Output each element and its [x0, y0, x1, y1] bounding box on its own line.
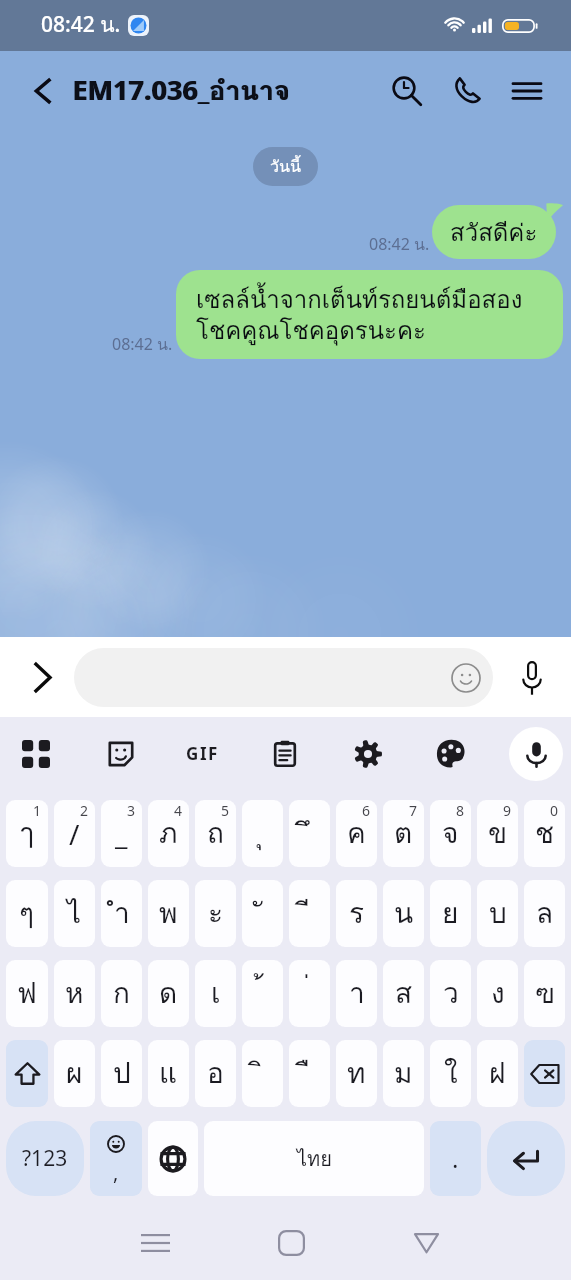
- button[interactable]: ห: [54, 960, 95, 1027]
- button[interactable]: Emoji: [90, 1121, 142, 1196]
- button[interactable]: ?123: [6, 1121, 84, 1196]
- button[interactable]: ค: [336, 800, 377, 867]
- staticText: .: [452, 1142, 459, 1175]
- button[interactable]: พ: [148, 880, 189, 947]
- button[interactable]: เซลล์น้ำจากเต็นท์รถยนต์มือสอง โชคคูณโชคอ…: [176, 270, 563, 359]
- button[interactable]: Settings: [339, 712, 397, 795]
- staticText: /: [69, 815, 80, 853]
- button[interactable]: Back: [20, 68, 66, 114]
- staticText: ไ: [67, 891, 82, 936]
- staticText: ๆ: [19, 891, 35, 936]
- staticText: ๅ: [20, 811, 34, 856]
- staticText: 08:42 น.: [41, 8, 121, 41]
- button[interactable]: ช: [524, 800, 565, 867]
- button[interactable]: GIF: [174, 712, 232, 795]
- button[interactable]: ๆ: [6, 880, 48, 947]
- button[interactable]: /: [54, 800, 95, 867]
- staticText: EM17.036_อำนาจ: [72, 69, 290, 112]
- button[interactable]: ส: [383, 960, 424, 1027]
- button[interactable]: า: [336, 960, 377, 1027]
- button[interactable]: ึ: [289, 800, 330, 867]
- staticText: ใ: [444, 1051, 458, 1096]
- staticText: ำ: [114, 891, 130, 936]
- button[interactable]: ม: [383, 1040, 424, 1107]
- staticText: ,: [113, 1159, 119, 1186]
- button[interactable]: ะ: [195, 880, 236, 947]
- button[interactable]: Emoji: [74, 648, 493, 707]
- button[interactable]: .: [430, 1121, 481, 1196]
- button[interactable]: Home: [259, 1211, 323, 1275]
- button[interactable]: ๅ: [6, 800, 48, 867]
- button[interactable]: Clipboard: [256, 712, 314, 795]
- button[interactable]: Switch language: [148, 1121, 198, 1196]
- button[interactable]: Recent apps: [123, 1211, 187, 1275]
- button[interactable]: ่: [289, 960, 330, 1027]
- button[interactable]: Themes: [422, 712, 480, 795]
- button[interactable]: อ: [195, 1040, 236, 1107]
- button[interactable]: ร: [336, 880, 377, 947]
- button[interactable]: _: [101, 800, 142, 867]
- button[interactable]: ว: [430, 960, 471, 1027]
- button[interactable]: ้: [242, 960, 283, 1027]
- button[interactable]: Expand menu: [15, 649, 71, 705]
- staticText: _: [115, 815, 128, 853]
- staticText: ด: [159, 971, 178, 1016]
- button[interactable]: ภ: [148, 800, 189, 867]
- staticText: ะ: [208, 891, 224, 936]
- button[interactable]: ล: [524, 880, 565, 947]
- button[interactable]: Menu: [497, 61, 557, 121]
- button[interactable]: ย: [430, 880, 471, 947]
- button[interactable]: วันนี้: [253, 147, 318, 186]
- button[interactable]: More apps: [7, 712, 65, 795]
- button[interactable]: ฃ: [524, 960, 565, 1027]
- staticText: ค: [347, 811, 366, 856]
- staticText: เ: [211, 971, 221, 1016]
- staticText: 6: [362, 801, 371, 820]
- staticText: จ: [442, 811, 459, 856]
- button[interactable]: Backspace: [524, 1040, 565, 1107]
- button[interactable]: Enter: [487, 1121, 565, 1196]
- button[interactable]: ไ: [54, 880, 95, 947]
- button[interactable]: ไทย: [204, 1121, 424, 1196]
- button[interactable]: Search: [377, 61, 437, 121]
- button[interactable]: ื: [289, 1040, 330, 1107]
- button[interactable]: ข: [477, 800, 518, 867]
- button[interactable]: ิ: [242, 1040, 283, 1107]
- button[interactable]: Call: [437, 61, 497, 121]
- staticText: EM17.036_อำนาจ: [73, 69, 291, 112]
- button[interactable]: ท: [336, 1040, 377, 1107]
- staticText: GIF: [186, 742, 220, 765]
- button[interactable]: บ: [477, 880, 518, 947]
- button[interactable]: ผ: [54, 1040, 95, 1107]
- button[interactable]: Voice message: [503, 649, 560, 706]
- button[interactable]: ป: [101, 1040, 142, 1107]
- staticText: ห: [65, 971, 84, 1016]
- button[interactable]: น: [383, 880, 424, 947]
- staticText: แ: [159, 1051, 178, 1096]
- staticText: 9: [503, 801, 512, 820]
- staticText: 1: [33, 801, 42, 820]
- button[interactable]: ุ: [242, 800, 283, 867]
- button[interactable]: Back: [394, 1211, 458, 1275]
- button[interactable]: Shift: [6, 1040, 48, 1107]
- button[interactable]: ด: [148, 960, 189, 1027]
- staticText: ข: [488, 811, 508, 856]
- button[interactable]: ฝ: [477, 1040, 518, 1107]
- button[interactable]: ถ: [195, 800, 236, 867]
- button[interactable]: ใ: [430, 1040, 471, 1107]
- button[interactable]: ั: [242, 880, 283, 947]
- button[interactable]: ฟ: [6, 960, 48, 1027]
- button[interactable]: ก: [101, 960, 142, 1027]
- button[interactable]: ต: [383, 800, 424, 867]
- button[interactable]: ง: [477, 960, 518, 1027]
- staticText: ฟ: [17, 971, 37, 1016]
- button[interactable]: ี: [289, 880, 330, 947]
- staticText: 5: [221, 801, 230, 820]
- button[interactable]: เ: [195, 960, 236, 1027]
- button[interactable]: แ: [148, 1040, 189, 1107]
- button[interactable]: Stickers: [92, 712, 150, 795]
- button[interactable]: สวัสดีค่ะ: [432, 205, 556, 259]
- button[interactable]: ำ: [101, 880, 142, 947]
- button[interactable]: จ: [430, 800, 471, 867]
- button[interactable]: Voice typing: [507, 712, 565, 795]
